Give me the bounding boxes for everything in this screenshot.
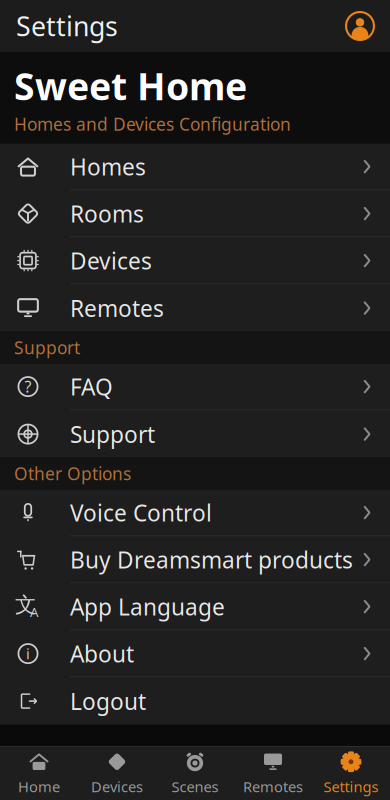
staticText: 文 (15, 592, 36, 618)
staticText: Settings (16, 8, 118, 44)
button[interactable]: Account (346, 4, 390, 48)
staticText: Sweet Home (14, 61, 247, 111)
staticText: Homes and Devices Configuration (14, 113, 291, 136)
staticText: Remotes (243, 777, 303, 796)
staticText: Remotes (70, 293, 164, 323)
staticText: Rooms (70, 198, 144, 229)
button[interactable]: i (0, 631, 390, 678)
button[interactable]: Homes (0, 144, 390, 191)
staticText: Settings (323, 777, 378, 796)
button[interactable]: Rooms (0, 191, 390, 238)
button[interactable]: Home (0, 746, 78, 800)
staticText: Support (70, 419, 155, 449)
button[interactable]: 文 (0, 584, 390, 631)
staticText: Homes (70, 151, 146, 182)
staticText: ? (24, 376, 31, 397)
staticText: Logout (70, 686, 146, 716)
staticText: About (70, 638, 134, 669)
staticText: Home (18, 777, 60, 796)
button[interactable]: Settings (312, 746, 390, 800)
staticText: Devices (70, 245, 152, 276)
button[interactable]: Buy Dreamsmart products (0, 537, 390, 584)
button[interactable]: Devices (78, 746, 156, 800)
staticText: Buy Dreamsmart products (70, 544, 353, 575)
button[interactable]: ? (0, 364, 390, 411)
staticText: Support (14, 336, 80, 359)
staticText: i (26, 644, 30, 663)
staticText: Devices (91, 777, 143, 796)
button[interactable]: Scenes (156, 746, 234, 800)
staticText: FAQ (70, 371, 113, 402)
button[interactable]: Devices (0, 238, 390, 285)
button[interactable]: Support (0, 411, 390, 458)
button[interactable]: Voice Control (0, 490, 390, 537)
staticText: Scenes (171, 777, 218, 796)
button[interactable]: Logout (0, 678, 390, 725)
staticText: Voice Control (70, 497, 212, 528)
staticText: Other Options (14, 462, 131, 485)
staticText: A (30, 603, 39, 621)
button[interactable]: Remotes (0, 285, 390, 332)
staticText: App Language (70, 591, 225, 622)
button[interactable]: Remotes (234, 746, 312, 800)
